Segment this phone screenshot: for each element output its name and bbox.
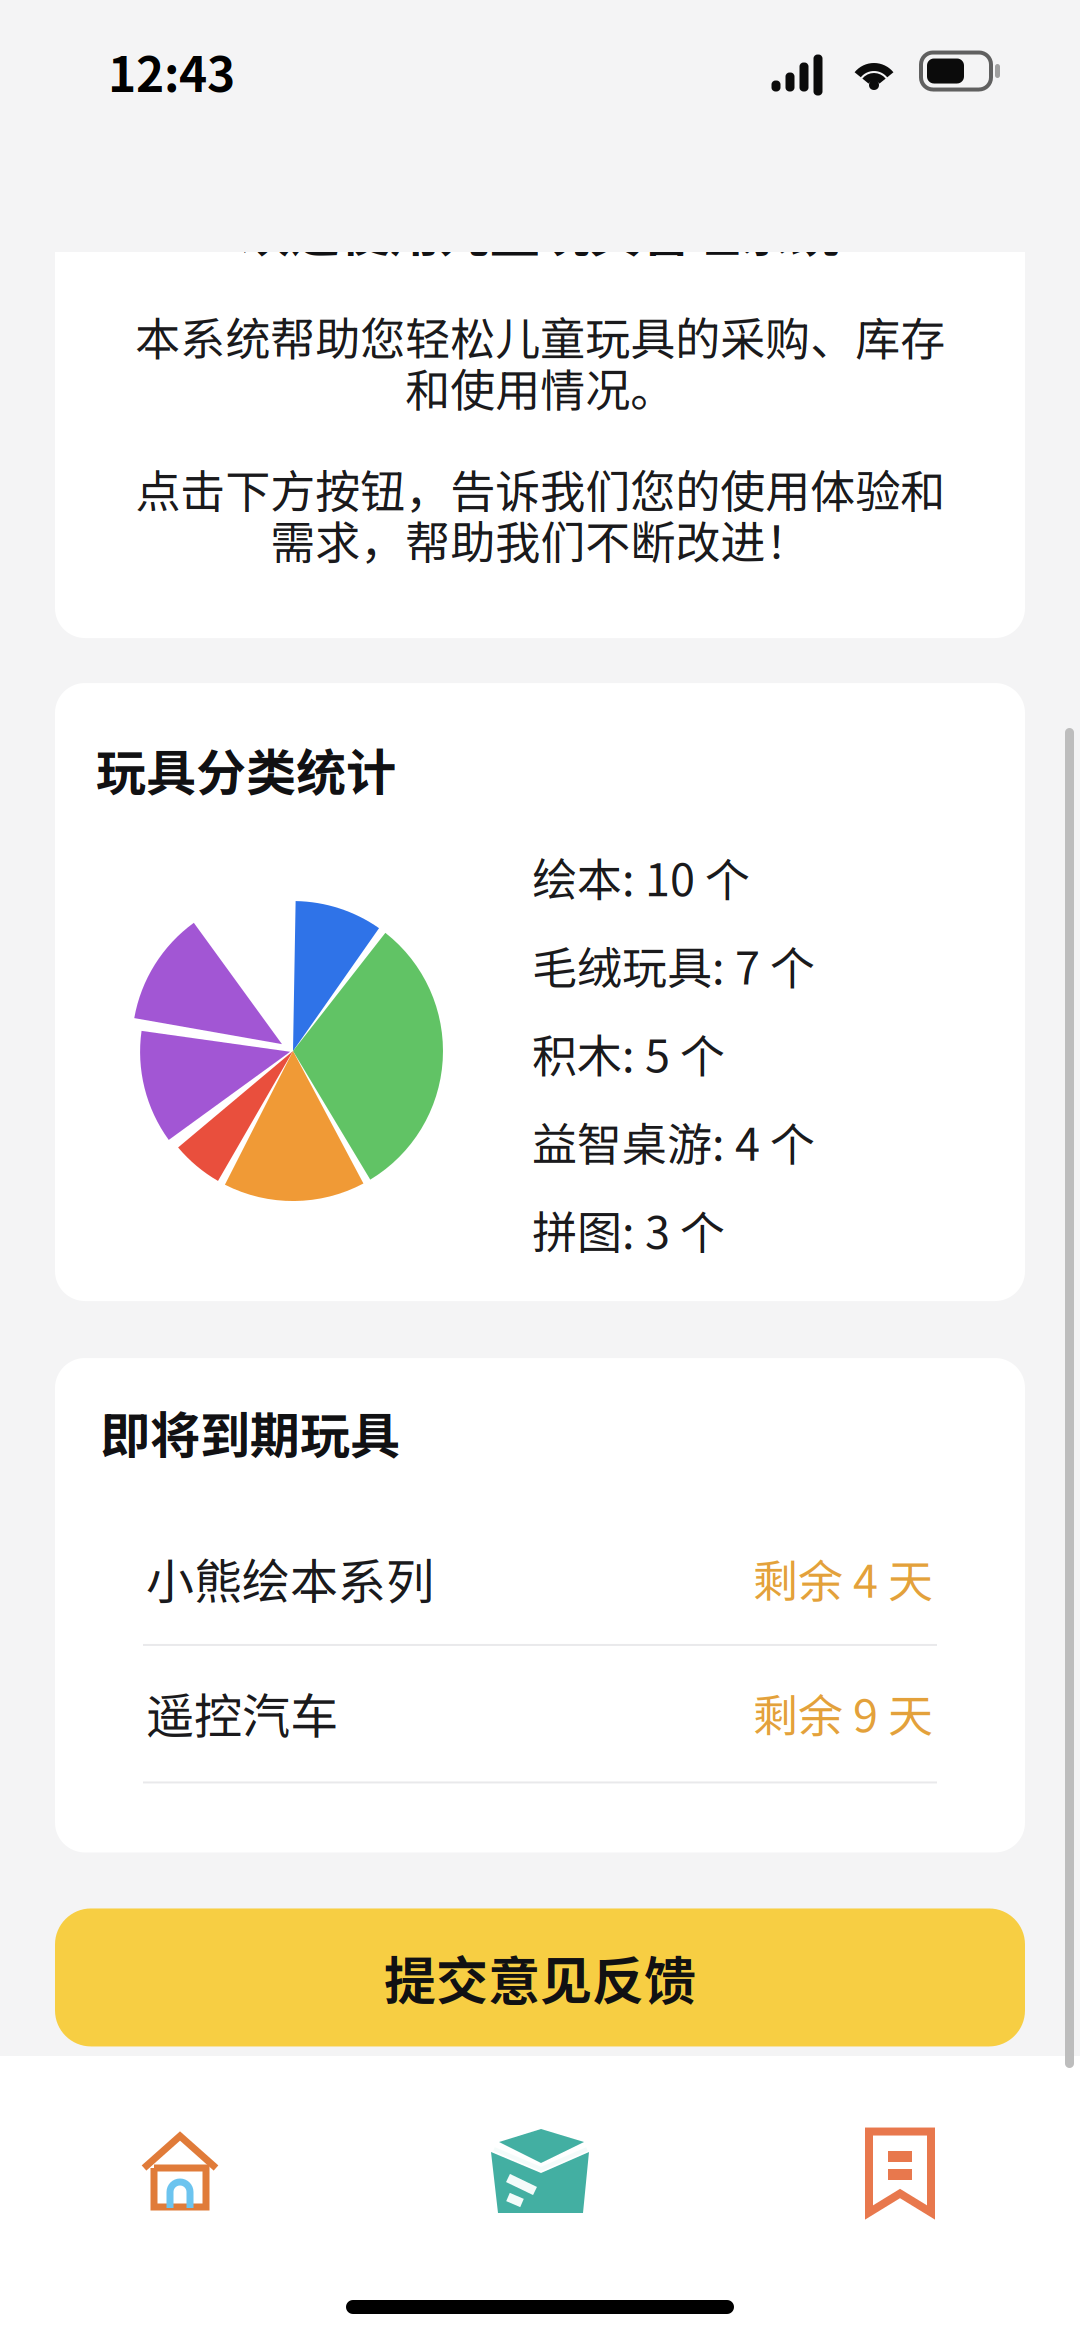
staticText: 毛绒玩具: 7 个 — [532, 932, 815, 997]
staticText: 提交意见反馈 — [384, 1940, 696, 2015]
staticText: 本系统帮助您轻松儿童玩具的采购、库存和使用情况。 — [135, 303, 945, 420]
staticText: 点击下方按钮，告诉我们您的使用体验和需求，帮助我们不断改进！ — [135, 456, 945, 572]
button[interactable]: 遥控汽车 — [55, 1678, 1025, 1747]
button[interactable]: 记录 — [720, 2122, 1080, 2222]
staticText: 即将到期玩具 — [100, 1396, 400, 1468]
staticText: 欢迎使用儿童玩具管理系统 — [240, 194, 840, 266]
staticText: 玩具分类统计 — [96, 733, 396, 805]
staticText: 小熊绘本系列 — [146, 1543, 434, 1613]
staticText: 剩余 4 天 — [753, 1546, 933, 1611]
staticText: 遥控汽车 — [146, 1678, 338, 1747]
staticText: 12:43 — [108, 36, 235, 106]
button[interactable]: 首页 — [0, 2122, 360, 2222]
staticText: 拼图: 3 个 — [532, 1197, 725, 1262]
staticText: 剩余 9 天 — [753, 1680, 933, 1745]
staticText: 绘本: 10 个 — [532, 844, 750, 909]
staticText: 积木: 5 个 — [532, 1020, 725, 1086]
staticText: 益智桌游: 4 个 — [532, 1108, 815, 1174]
button[interactable]: 库存 — [360, 2122, 720, 2222]
button[interactable]: 小熊绘本系列 — [55, 1543, 1025, 1613]
button[interactable]: 提交意见反馈 — [55, 1908, 1025, 2046]
